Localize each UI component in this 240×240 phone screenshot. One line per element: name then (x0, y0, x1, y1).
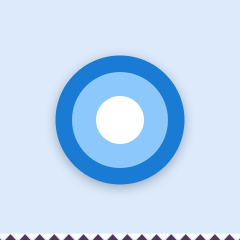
button[interactable]: Record (55, 55, 184, 184)
